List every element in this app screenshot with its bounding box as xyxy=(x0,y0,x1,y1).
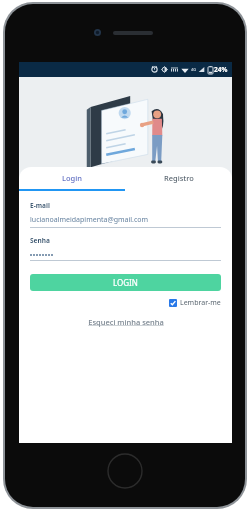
button[interactable]: Esqueci minha senha xyxy=(86,316,166,328)
staticText: Lembrar-me xyxy=(180,298,221,308)
button[interactable]: lucianoalmeidapimenta@gmail.com xyxy=(30,215,221,228)
button[interactable] xyxy=(30,251,221,261)
button[interactable]: Lembrar-me xyxy=(169,298,221,308)
button[interactable]: Login xyxy=(19,167,125,189)
staticText: lucianoalmeidapimenta@gmail.com xyxy=(30,215,149,225)
staticText: Registro xyxy=(164,173,194,183)
staticText: LOGIN xyxy=(113,277,138,288)
staticText: E-mail xyxy=(30,201,50,210)
staticText: Esqueci minha senha xyxy=(88,317,164,327)
staticText: 4G xyxy=(191,67,197,72)
staticText: Senha xyxy=(30,236,50,245)
staticText: Login xyxy=(62,173,82,183)
button[interactable]: Registro xyxy=(125,167,232,189)
button[interactable]: LOGIN xyxy=(30,274,221,291)
button[interactable]: Home xyxy=(107,453,143,489)
staticText: 24% xyxy=(214,65,228,74)
